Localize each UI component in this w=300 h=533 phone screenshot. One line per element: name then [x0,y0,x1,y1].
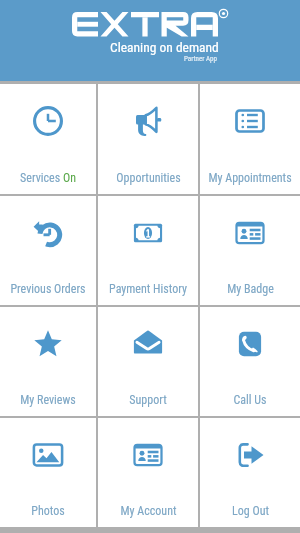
staticText: Log Out [232,504,269,518]
button[interactable]: My Account [98,418,198,527]
staticText: Previous Orders [10,282,86,296]
staticText: Cleaning on demand [110,39,219,55]
staticText: Call Us [233,393,267,407]
staticText: Support [129,393,167,407]
button[interactable]: Payment History [98,196,198,305]
staticText: My Appointments [208,171,292,185]
staticText: Services On [20,171,76,185]
button[interactable]: Previous Orders [0,196,96,305]
staticText: Photos [31,504,65,518]
staticText: My Reviews [20,393,76,407]
button[interactable]: My Reviews [0,307,96,416]
button[interactable]: Services [0,84,96,194]
button[interactable]: Log Out [200,418,300,527]
button[interactable]: My Appointments [200,84,300,194]
button[interactable]: My Badge [200,196,300,305]
staticText: Payment History [109,282,187,296]
button[interactable]: Call Us [200,307,300,416]
staticText: Opportunities [116,171,181,185]
staticText: My Badge [227,282,274,296]
button[interactable]: Opportunities [98,84,198,194]
staticText: Partner App [184,55,217,63]
button[interactable]: Photos [0,418,96,527]
staticText: My Account [120,504,177,518]
button[interactable]: Support [98,307,198,416]
